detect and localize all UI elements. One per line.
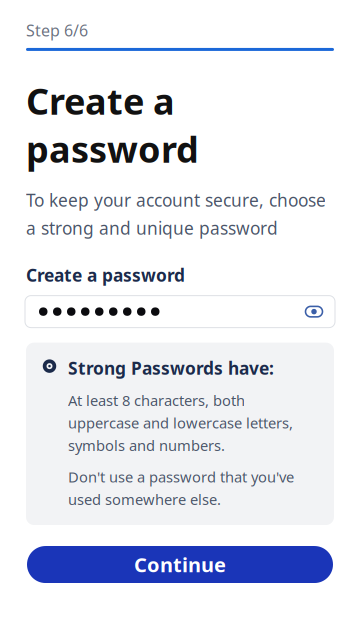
staticText: To keep your account secure, choose a st… xyxy=(26,189,326,240)
button[interactable]: Continue xyxy=(27,546,333,583)
staticText: Create a password xyxy=(26,77,199,173)
staticText: Continue xyxy=(134,551,226,578)
button[interactable]: Show password xyxy=(299,298,329,326)
staticText: Strong Passwords have: xyxy=(68,357,274,380)
staticText: Create a password xyxy=(26,264,185,287)
staticText: At least 8 characters, both uppercase an… xyxy=(68,391,293,455)
staticText: Step 6/6 xyxy=(26,20,88,41)
staticText: Don't use a password that you've used so… xyxy=(68,467,294,509)
